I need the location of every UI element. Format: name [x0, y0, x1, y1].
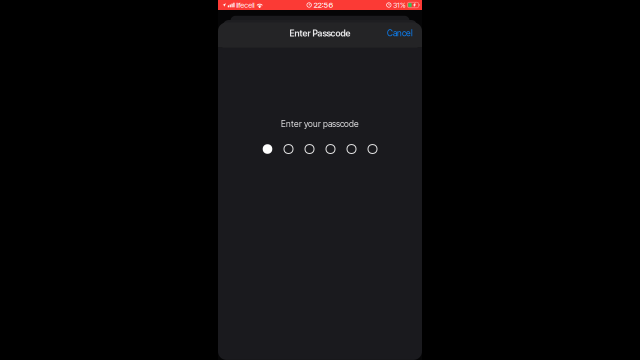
button[interactable]: Passcode field, 1 of 6 digits entered	[262, 144, 377, 154]
button[interactable]: Cancel	[378, 21, 422, 45]
staticText: 22:56	[314, 0, 334, 10]
staticText: Enter your passcode	[281, 119, 359, 129]
staticText: Cancel	[387, 28, 413, 38]
staticText: Enter Passcode	[289, 28, 350, 38]
staticText: lifecell	[236, 0, 254, 9]
staticText: 31%	[393, 0, 406, 9]
